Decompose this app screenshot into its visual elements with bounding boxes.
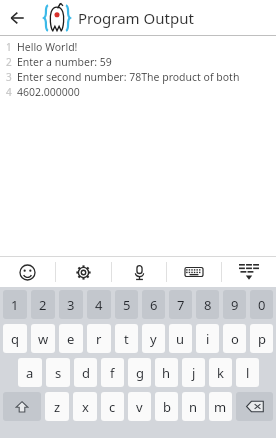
staticText: 0: [258, 296, 266, 314]
button[interactable]: z: [45, 392, 69, 421]
button[interactable]: q: [3, 324, 27, 353]
staticText: p: [258, 330, 266, 348]
staticText: 1: [11, 296, 19, 314]
button[interactable]: Backspace: [236, 392, 273, 421]
button[interactable]: 1: [3, 290, 27, 319]
staticText: o: [231, 330, 239, 348]
button[interactable]: 8: [196, 290, 219, 319]
staticText: 6: [150, 296, 158, 314]
staticText: 4: [6, 85, 12, 99]
staticText: b: [163, 398, 171, 416]
staticText: 2: [39, 296, 47, 314]
staticText: d: [82, 364, 90, 382]
staticText: Enter a number: 59: [17, 55, 112, 69]
staticText: 3: [6, 70, 12, 84]
staticText: a: [26, 364, 34, 382]
button[interactable]: o: [223, 324, 246, 353]
staticText: 1: [6, 40, 12, 54]
button[interactable]: r: [87, 324, 111, 353]
staticText: g: [136, 364, 144, 382]
button[interactable]: Voice input: [112, 257, 166, 287]
staticText: j: [192, 364, 196, 382]
button[interactable]: l: [236, 358, 259, 387]
button[interactable]: Back: [0, 1, 34, 35]
button[interactable]: b: [155, 392, 178, 421]
staticText: h: [162, 364, 171, 382]
staticText: r: [96, 330, 102, 348]
staticText: m: [214, 398, 227, 416]
staticText: c: [109, 398, 116, 416]
button[interactable]: 3: [59, 290, 83, 319]
staticText: e: [67, 330, 75, 348]
button[interactable]: n: [182, 392, 205, 421]
button[interactable]: c: [101, 392, 124, 421]
button[interactable]: x: [73, 392, 97, 421]
staticText: u: [176, 330, 185, 348]
button[interactable]: f: [101, 358, 124, 387]
staticText: 3: [67, 296, 75, 314]
staticText: 9: [231, 296, 239, 314]
staticText: z: [54, 398, 61, 416]
button[interactable]: h: [155, 358, 178, 387]
button[interactable]: a: [18, 358, 42, 387]
staticText: 8: [204, 296, 212, 314]
staticText: Hello World!: [17, 40, 78, 54]
button[interactable]: Keyboard: [167, 257, 221, 287]
button[interactable]: 7: [169, 290, 192, 319]
staticText: Enter second number: 78The product of bo…: [17, 70, 276, 84]
staticText: k: [217, 364, 224, 382]
staticText: 7: [177, 296, 185, 314]
button[interactable]: s: [46, 358, 70, 387]
button[interactable]: j: [182, 358, 205, 387]
button[interactable]: Hide keyboard: [222, 257, 276, 287]
staticText: f: [110, 364, 115, 382]
button[interactable]: y: [142, 324, 165, 353]
button[interactable]: 0: [250, 290, 273, 319]
staticText: x: [82, 398, 89, 416]
button[interactable]: v: [128, 392, 151, 421]
button[interactable]: Emoji: [0, 257, 55, 287]
staticText: i: [206, 330, 210, 348]
button[interactable]: w: [31, 324, 55, 353]
staticText: l: [246, 364, 250, 382]
staticText: n: [189, 398, 198, 416]
staticText: 4: [95, 296, 103, 314]
button[interactable]: 6: [142, 290, 165, 319]
button[interactable]: u: [169, 324, 192, 353]
staticText: v: [136, 398, 143, 416]
button[interactable]: m: [209, 392, 232, 421]
button[interactable]: g: [128, 358, 151, 387]
staticText: 4602.000000: [17, 85, 80, 99]
button[interactable]: Shift: [3, 392, 41, 421]
button[interactable]: p: [250, 324, 273, 353]
staticText: s: [55, 364, 62, 382]
button[interactable]: 4: [87, 290, 111, 319]
button[interactable]: t: [115, 324, 138, 353]
button[interactable]: 2: [31, 290, 55, 319]
button[interactable]: 9: [223, 290, 246, 319]
button[interactable]: Settings: [56, 257, 111, 287]
staticText: t: [124, 330, 129, 348]
staticText: w: [38, 330, 49, 348]
staticText: Program Output: [78, 8, 194, 28]
staticText: y: [150, 330, 157, 348]
button[interactable]: d: [74, 358, 97, 387]
button[interactable]: 5: [115, 290, 138, 319]
staticText: q: [11, 330, 19, 348]
button[interactable]: k: [209, 358, 232, 387]
staticText: 5: [123, 296, 131, 314]
button[interactable]: e: [59, 324, 83, 353]
staticText: 2: [6, 55, 12, 69]
button[interactable]: i: [196, 324, 219, 353]
